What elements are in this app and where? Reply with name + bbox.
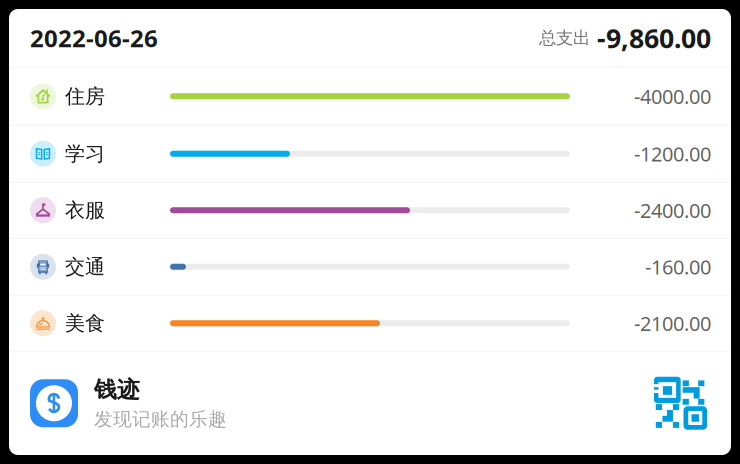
staticText: 发现记账的乐趣: [94, 408, 227, 431]
staticText: 衣服: [65, 198, 105, 223]
staticText: -1200.00: [634, 140, 711, 167]
staticText: -2100.00: [634, 310, 711, 337]
staticText: -160.00: [645, 253, 711, 280]
button[interactable]: 学习: [9, 126, 731, 183]
staticText: -9,860.00: [590, 20, 711, 56]
button[interactable]: 美食: [9, 296, 731, 352]
staticText: -4000.00: [634, 83, 711, 110]
button[interactable]: 衣服: [9, 183, 731, 239]
staticText: 总支出: [539, 27, 590, 49]
staticText: 2022-06-26: [30, 22, 158, 54]
staticText: -2400.00: [634, 197, 711, 224]
button[interactable]: 钱迹: [9, 352, 731, 455]
staticText: 美食: [65, 311, 105, 336]
staticText: 学习: [65, 141, 105, 166]
staticText: 钱迹: [94, 376, 140, 404]
staticText: 住房: [65, 84, 105, 109]
button[interactable]: 住房: [9, 68, 731, 126]
staticText: 交通: [65, 254, 105, 279]
button[interactable]: 交通: [9, 239, 731, 296]
